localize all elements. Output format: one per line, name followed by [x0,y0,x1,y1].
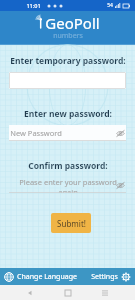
button[interactable]: New Password [9,125,126,141]
button[interactable] [9,72,126,89]
button[interactable]: Home [61,286,75,300]
staticText: numbers [53,31,83,41]
staticText: GeoPoll [45,13,100,33]
staticText: 54 [107,2,113,9]
staticText: Change Language [17,272,77,282]
staticText: Enter new password: [24,108,112,120]
button[interactable]: Please enter your password again [9,177,126,193]
staticText: New Password [10,128,62,138]
staticText: Confirm password: [28,160,108,172]
staticText: 11:01 [26,2,41,9]
staticText: Please enter your password again [10,177,126,193]
staticText: Enter temporary password: [10,55,126,67]
button[interactable]: Submit! [51,213,91,233]
button[interactable]: Show password [115,128,126,139]
staticText: Submit! [57,218,86,229]
button[interactable]: Settings [91,272,135,282]
button[interactable]: Show password [115,180,126,191]
button[interactable]: Change Language [0,272,91,282]
button[interactable]: Recent apps [98,286,112,300]
button[interactable]: Back [23,286,37,300]
staticText: Settings [91,272,118,282]
